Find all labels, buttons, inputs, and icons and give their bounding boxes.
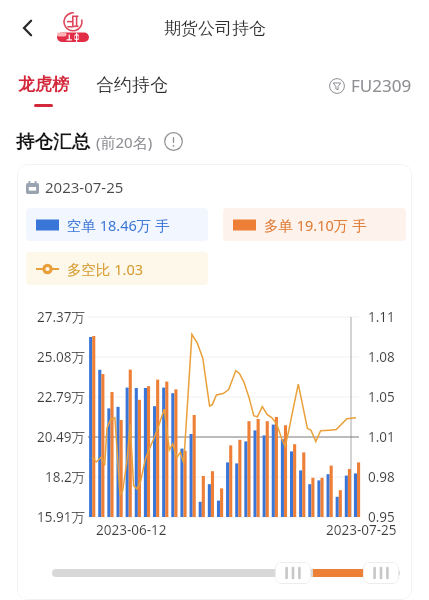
staticText: 1.11 xyxy=(368,308,395,326)
staticText: 多单 19.10万 手 xyxy=(264,215,367,235)
button[interactable]: Back xyxy=(8,8,48,48)
button[interactable]: 空单 18.46万 手 xyxy=(26,208,208,241)
button[interactable]: 龙虎榜 xyxy=(18,74,69,107)
staticText: 25.08万 xyxy=(37,348,86,366)
staticText: 20.49万 xyxy=(37,428,86,446)
staticText: 18.2万 xyxy=(45,468,86,486)
staticText: 持仓汇总 xyxy=(16,130,90,153)
staticText: 空单 18.46万 手 xyxy=(67,215,170,235)
button[interactable]: Slider handle xyxy=(363,562,399,584)
staticText: FU2309 xyxy=(351,74,412,97)
button[interactable]: Info xyxy=(164,132,183,151)
staticText: (前20名) xyxy=(96,132,153,152)
staticText: 15.91万 xyxy=(37,508,86,526)
staticText: 期货公司持仓 xyxy=(164,18,266,39)
staticText: 多空比 1.03 xyxy=(67,259,144,279)
staticText: 1.08 xyxy=(368,348,395,366)
staticText: 合约持仓 xyxy=(96,74,168,97)
button[interactable]: 合约持仓 xyxy=(96,74,168,97)
staticText: 2023-06-12 xyxy=(96,521,167,539)
staticText: 2023-07-25 xyxy=(45,177,124,197)
staticText: 1.01 xyxy=(368,428,395,446)
staticText: 龙虎榜 xyxy=(18,74,69,95)
staticText: 22.79万 xyxy=(37,388,86,406)
staticText: 0.98 xyxy=(368,468,395,486)
staticText: 1.05 xyxy=(368,388,395,406)
staticText: 0.95 xyxy=(368,508,395,526)
button[interactable]: FU2309 xyxy=(329,74,412,97)
staticText: 27.37万 xyxy=(37,308,86,326)
button[interactable]: 多空比 1.03 xyxy=(26,252,208,285)
staticText: 2023-07-25 xyxy=(326,521,397,539)
button[interactable]: 多单 19.10万 手 xyxy=(223,208,406,241)
button[interactable]: Slider handle xyxy=(275,562,311,584)
